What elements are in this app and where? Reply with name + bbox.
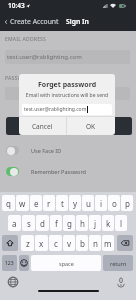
button[interactable]: s	[22, 215, 35, 231]
button[interactable]: n	[89, 235, 101, 251]
button[interactable]: b	[76, 235, 88, 251]
button[interactable]: Sign In	[65, 15, 90, 28]
staticText: d	[40, 218, 45, 229]
button[interactable]: p	[121, 195, 133, 211]
button[interactable]: 123	[2, 255, 17, 271]
staticText: 10:43	[8, 1, 25, 10]
staticText: 123	[5, 260, 14, 267]
staticText: space	[59, 260, 74, 267]
staticText: EMAIL ADDRESS	[5, 36, 47, 43]
staticText: t	[61, 198, 64, 209]
staticText: r	[47, 198, 51, 209]
button[interactable]: v	[63, 235, 75, 251]
staticText: Remember Password	[31, 168, 86, 175]
staticText: b	[80, 238, 85, 249]
button[interactable]: e	[30, 195, 42, 211]
button[interactable]: d	[36, 215, 49, 231]
staticText: s	[27, 218, 31, 229]
button[interactable]: Change keyboard	[7, 276, 19, 288]
staticText: w	[19, 198, 26, 209]
staticText: PASSWORD	[5, 75, 34, 82]
staticText: f	[55, 218, 58, 229]
staticText: m	[104, 238, 112, 249]
staticText: p	[125, 198, 130, 209]
button[interactable]: c	[49, 235, 62, 251]
staticText: y	[73, 198, 78, 209]
button[interactable]: i	[95, 195, 107, 211]
button[interactable]: test.user@rablighting.com	[22, 104, 112, 115]
button[interactable]: o	[108, 195, 120, 211]
staticText: e	[34, 198, 39, 209]
staticText: i	[100, 198, 103, 209]
button[interactable]: Cancel	[19, 117, 66, 135]
staticText: test.user@rablighting.com	[24, 106, 87, 113]
button[interactable]: w	[16, 195, 29, 211]
button[interactable]: Dictation	[115, 276, 127, 288]
button[interactable]: h	[76, 215, 88, 231]
button[interactable]: Backspace	[117, 235, 133, 251]
button[interactable]: Use Face ID	[6, 146, 62, 155]
button[interactable]: Remember Password	[6, 167, 86, 176]
staticText: Use Face ID	[31, 147, 62, 154]
button[interactable]: q	[2, 195, 15, 211]
button[interactable]: z	[21, 235, 34, 251]
staticText: return	[110, 260, 127, 267]
staticText: test.user@rablighting.com	[7, 53, 82, 61]
staticText: Create Account	[10, 17, 59, 26]
button[interactable]: t	[56, 195, 68, 211]
staticText: q	[6, 198, 11, 209]
staticText: l	[120, 218, 123, 229]
button[interactable]: j	[89, 215, 101, 231]
staticText: Sign In	[66, 17, 89, 26]
button[interactable]: Emoji	[19, 255, 29, 271]
button[interactable]: return	[103, 255, 133, 271]
button[interactable]: space	[31, 255, 101, 271]
staticText: x	[39, 238, 44, 249]
button[interactable]: g	[63, 215, 75, 231]
button[interactable]: f	[50, 215, 62, 231]
staticText: j	[94, 218, 97, 229]
staticText: c	[54, 238, 58, 249]
staticText: o	[112, 198, 117, 209]
staticText: z	[26, 238, 30, 249]
staticText: Cancel	[32, 122, 53, 131]
staticText: u	[86, 198, 91, 209]
button[interactable]: Create Account	[2, 15, 60, 28]
button[interactable]: x	[35, 235, 48, 251]
staticText: Email with instructions will be send	[19, 92, 115, 99]
staticText: v	[67, 238, 72, 249]
button[interactable]: test.user@rablighting.com	[5, 50, 130, 64]
button[interactable]: Shift	[2, 235, 18, 251]
button[interactable]: r	[43, 195, 55, 211]
button[interactable]: OK	[67, 117, 115, 135]
staticText: a	[12, 218, 17, 229]
button[interactable]: y	[69, 195, 81, 211]
button[interactable]: m	[102, 235, 114, 251]
button[interactable]	[6, 117, 132, 135]
staticText: Forget password	[19, 80, 115, 90]
button[interactable]	[5, 87, 130, 100]
button[interactable]: u	[82, 195, 94, 211]
staticText: h	[80, 218, 85, 229]
button[interactable]: a	[8, 215, 21, 231]
button[interactable]: l	[115, 215, 127, 231]
button[interactable]: k	[102, 215, 114, 231]
staticText: g	[67, 218, 72, 229]
staticText: OK	[86, 122, 96, 131]
staticText: n	[93, 238, 98, 249]
staticText: k	[106, 218, 111, 229]
